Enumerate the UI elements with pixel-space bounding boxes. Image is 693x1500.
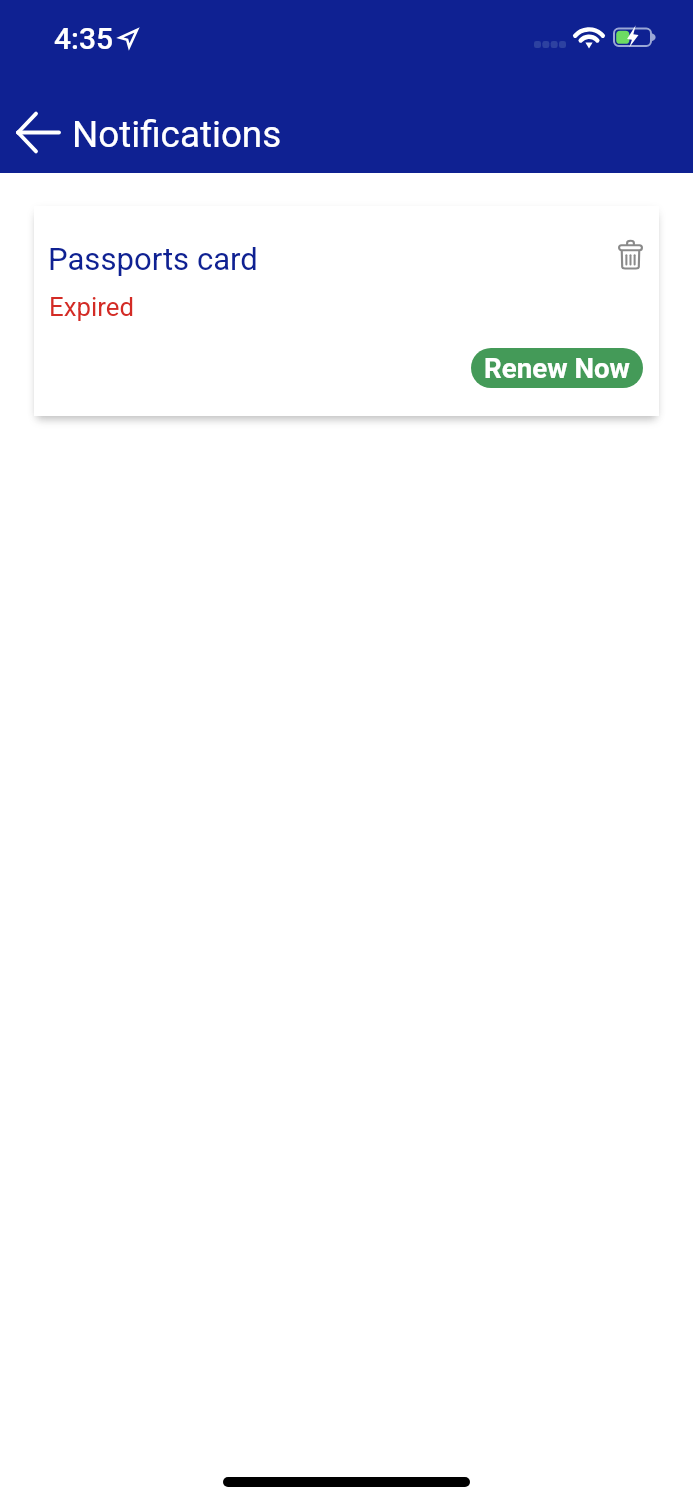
staticText: 4:35 (54, 21, 114, 56)
staticText: Expired (49, 292, 134, 322)
staticText: Passports card (48, 241, 258, 277)
button[interactable]: Delete (606, 231, 655, 280)
staticText: Renew Now (484, 352, 630, 384)
button[interactable]: Renew Now (471, 348, 643, 388)
button[interactable]: Back (8, 106, 68, 158)
button[interactable]: Passports card (34, 206, 659, 416)
staticText: Notifications (72, 113, 282, 156)
